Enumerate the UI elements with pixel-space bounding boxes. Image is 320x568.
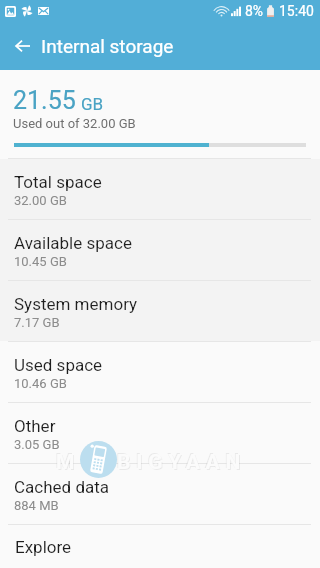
staticText: Internal storage bbox=[41, 35, 174, 57]
staticText: Used out of 32.00 GB bbox=[13, 116, 136, 131]
staticText: System memory bbox=[14, 294, 138, 314]
staticText: M bbox=[57, 451, 82, 476]
staticText: 3.05 GB bbox=[14, 437, 60, 452]
staticText: Cached data bbox=[14, 477, 110, 497]
staticText: Available space bbox=[14, 233, 132, 253]
button[interactable]: Available space bbox=[0, 220, 320, 280]
staticText: 21.55 bbox=[13, 86, 76, 115]
button[interactable]: Explore bbox=[0, 525, 320, 568]
staticText: 884 MB bbox=[14, 498, 59, 513]
staticText: BIGYAAN bbox=[116, 449, 246, 474]
staticText: Explore bbox=[15, 537, 72, 557]
staticText: Used space bbox=[14, 355, 103, 375]
staticText: 15:40 bbox=[279, 3, 314, 19]
button[interactable]: Total space bbox=[0, 159, 320, 219]
button[interactable]: Back bbox=[0, 24, 44, 68]
staticText: BIGYAAN bbox=[118, 451, 248, 476]
staticText: M bbox=[55, 449, 80, 474]
staticText: M bbox=[56, 450, 81, 475]
staticText: 32.00 GB bbox=[14, 193, 67, 208]
button[interactable]: Cached data bbox=[0, 464, 320, 524]
button[interactable]: Used space bbox=[0, 342, 320, 402]
staticText: BIGYAAN bbox=[117, 450, 247, 475]
staticText: 7.17 GB bbox=[14, 315, 60, 330]
button[interactable]: System memory bbox=[0, 281, 320, 341]
staticText: GB bbox=[81, 94, 104, 114]
button[interactable]: Other bbox=[0, 403, 320, 463]
staticText: 8% bbox=[245, 3, 264, 19]
staticText: 10.46 GB bbox=[14, 376, 67, 391]
staticText: Other bbox=[14, 416, 56, 436]
staticText: Total space bbox=[14, 172, 102, 192]
staticText: 10.45 GB bbox=[14, 254, 67, 269]
